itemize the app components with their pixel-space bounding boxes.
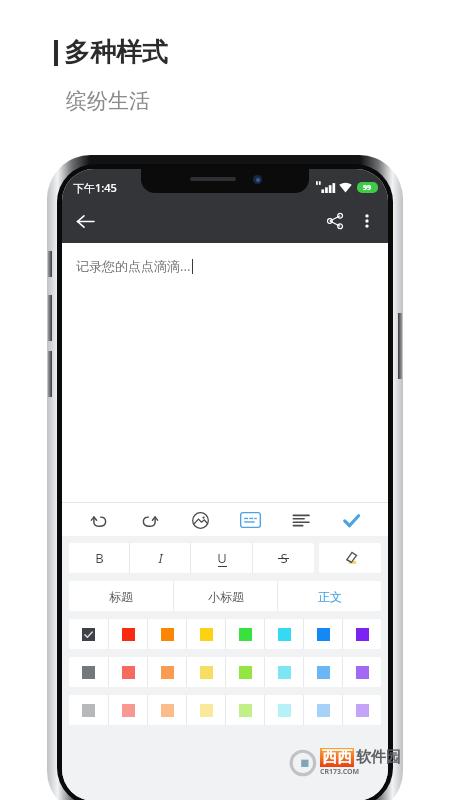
button[interactable]: Align [287,509,315,531]
button[interactable]: Color 2 [148,619,186,649]
button[interactable]: Color 5 [265,695,303,725]
button[interactable]: Color 6 [304,695,342,725]
staticText: 标题 [109,589,133,604]
button[interactable]: Color 1 [109,695,147,725]
staticText: U [217,549,227,567]
button[interactable]: Insert image [186,509,214,531]
button[interactable]: Color 7 [343,657,381,687]
button[interactable]: Color 2 [148,695,186,725]
staticText: 西西 [322,748,352,767]
button[interactable]: Highlighter [319,543,381,573]
button[interactable]: Color 6 [304,657,342,687]
button[interactable]: 正文 [278,581,381,611]
button[interactable]: I [130,543,190,573]
button[interactable]: Color 0 [69,657,108,687]
button[interactable]: Color 4 [226,695,264,725]
button[interactable]: Color 6 [304,619,342,649]
button[interactable]: Share [318,204,352,238]
button[interactable]: S [253,543,314,573]
button[interactable]: Color 4 [226,619,264,649]
staticText: 缤纷生活 [66,88,150,114]
button[interactable]: B [69,543,129,573]
button[interactable]: Color 0 [69,695,108,725]
button[interactable]: 标题 [69,581,173,611]
button[interactable]: Color 3 [187,657,225,687]
button[interactable]: More options [352,206,382,236]
staticText: CR173.COM [320,767,360,777]
button[interactable]: Color 0 [69,619,108,649]
button[interactable]: Color 3 [187,619,225,649]
button[interactable]: Color 4 [226,657,264,687]
button[interactable]: Color 7 [343,695,381,725]
button[interactable]: Text format [236,509,264,531]
staticText: 多种样式 [64,36,168,69]
button[interactable]: Color 1 [109,619,147,649]
staticText: B [95,549,104,567]
staticText: 小标题 [208,589,244,604]
button[interactable]: Color 5 [265,657,303,687]
button[interactable]: 小标题 [174,581,277,611]
button[interactable]: U [191,543,252,573]
button[interactable]: Done [337,509,365,531]
staticText: S [280,549,288,567]
staticText: 下午1:45 [73,180,117,195]
button[interactable]: Undo [85,509,113,531]
staticText: 软件园 [356,748,401,767]
staticText: I [158,549,163,567]
staticText: 正文 [318,589,342,604]
button[interactable]: Color 3 [187,695,225,725]
staticText: 99 [363,183,372,193]
button[interactable]: Color 7 [343,619,381,649]
button[interactable]: Back [68,204,102,238]
staticText: 记录您的点点滴滴... [76,257,191,275]
button[interactable]: Redo [135,509,163,531]
button[interactable]: Color 1 [109,657,147,687]
button[interactable]: Color 5 [265,619,303,649]
button[interactable]: Color 2 [148,657,186,687]
